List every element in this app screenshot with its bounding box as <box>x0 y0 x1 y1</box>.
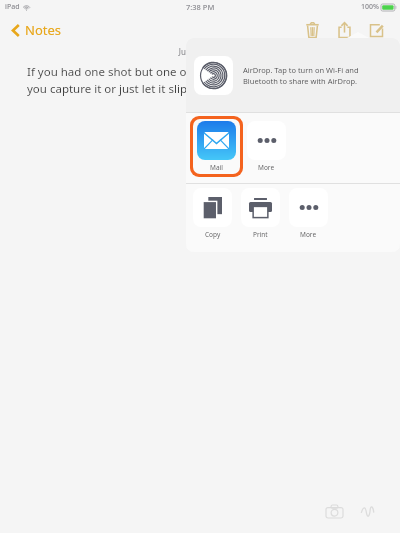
button[interactable]: Delete <box>296 14 328 46</box>
staticText: 100% <box>361 2 379 12</box>
button[interactable]: More <box>289 188 328 239</box>
button[interactable]: Share <box>328 14 360 46</box>
staticText: iPad <box>5 2 20 12</box>
button[interactable]: Copy <box>193 188 232 239</box>
staticText: More <box>300 230 317 239</box>
staticText: Print <box>253 230 268 239</box>
button[interactable]: Mail <box>193 119 240 174</box>
button[interactable]: Notes <box>8 17 65 43</box>
staticText: If you had one shot but one opportunity … <box>27 64 280 97</box>
button[interactable]: Sketch <box>354 497 382 525</box>
button[interactable]: Compose <box>360 14 392 46</box>
staticText: July 5, 2015 <box>0 46 400 57</box>
staticText: Notes <box>25 21 61 39</box>
button[interactable]: AirDrop. Tap to turn on Wi-Fi and Blueto… <box>186 38 400 112</box>
staticText: Mail <box>210 163 223 172</box>
button[interactable]: Print <box>241 188 280 239</box>
staticText: Copy <box>205 230 221 239</box>
staticText: 7:38 PM <box>186 2 215 12</box>
button[interactable]: Camera <box>320 497 348 525</box>
staticText: AirDrop. Tap to turn on Wi-Fi and Blueto… <box>243 65 392 86</box>
staticText: More <box>258 163 275 172</box>
button[interactable]: More <box>247 121 286 172</box>
